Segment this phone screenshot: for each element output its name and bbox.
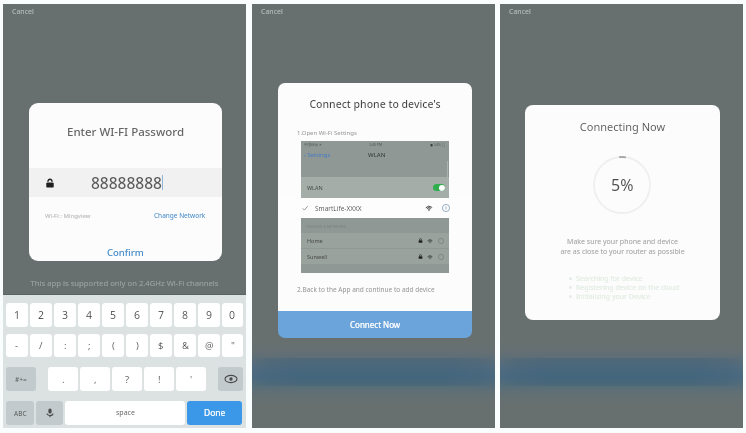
staticText: 5 — [110, 308, 117, 322]
staticText: / — [39, 339, 43, 352]
button[interactable]: 8 — [174, 303, 196, 327]
staticText: 2.Back to the App and continue to add de… — [297, 285, 435, 294]
button[interactable]: 0 — [222, 303, 243, 327]
staticText: Connecting Now — [525, 119, 720, 134]
staticText: 7 — [158, 308, 165, 322]
button[interactable]: 6 — [126, 303, 148, 327]
staticText: $ — [158, 339, 164, 352]
button[interactable]: @ — [198, 334, 220, 357]
staticText: : — [64, 339, 67, 352]
button[interactable]: ( — [102, 334, 124, 357]
button[interactable]: Connect Now — [278, 311, 472, 338]
staticText: ; — [88, 339, 91, 352]
staticText: Sunwell — [307, 253, 328, 260]
staticText: Confirm — [107, 246, 144, 259]
staticText: " — [231, 339, 235, 352]
button[interactable]: - — [6, 334, 28, 357]
staticText: WLAN — [307, 184, 323, 191]
button[interactable]: ) — [126, 334, 148, 357]
staticText: 0 — [229, 308, 236, 322]
staticText: 6 — [134, 308, 141, 322]
staticText: ) — [136, 339, 139, 352]
button[interactable]: ? — [112, 367, 142, 391]
staticText: Connect phone to device's — [278, 97, 472, 111]
button[interactable]: 1 — [6, 303, 28, 327]
staticText: 4 — [86, 308, 93, 322]
staticText: Wi-Fi : Mingview — [45, 212, 91, 220]
button[interactable]: ABC — [6, 401, 34, 425]
staticText: 2 — [38, 308, 45, 322]
button[interactable]: ! — [144, 367, 174, 391]
button[interactable]: 5 — [102, 303, 124, 327]
button[interactable]: & — [174, 334, 196, 357]
button[interactable]: ; — [78, 334, 100, 357]
staticText: ‹ Settings — [304, 151, 331, 159]
staticText: 1 — [14, 308, 21, 322]
button[interactable]: " — [222, 334, 243, 357]
button[interactable]: 3 — [54, 303, 76, 327]
staticText: , — [94, 373, 97, 386]
staticText: Initializing your Device — [576, 292, 651, 301]
staticText: & — [182, 339, 189, 352]
staticText: 88888888 — [91, 172, 162, 193]
button[interactable]: 2 — [30, 303, 52, 327]
staticText: CHOOSE A NETWORK... — [306, 224, 350, 229]
button[interactable]: Cancel — [500, 4, 743, 22]
button[interactable]: 9 — [198, 303, 220, 327]
staticText: Done — [204, 407, 226, 419]
button[interactable]: ' — [176, 367, 206, 391]
staticText: 9 — [206, 308, 213, 322]
staticText: ? — [125, 373, 130, 386]
staticText: ● 54% □ — [430, 142, 446, 147]
button[interactable]: : — [54, 334, 76, 357]
staticText: Home — [307, 237, 323, 244]
staticText: Searching for device — [576, 274, 643, 283]
button[interactable]: #+= — [6, 367, 36, 391]
staticText: @ — [205, 339, 214, 352]
button[interactable]: Confirm — [29, 244, 222, 260]
button[interactable]: Voice input — [36, 401, 63, 425]
staticText: 5% — [611, 174, 634, 196]
staticText: Cancel — [12, 7, 34, 17]
button[interactable]: Cancel — [252, 4, 495, 22]
button[interactable]: / — [30, 334, 52, 357]
button[interactable]: Done — [187, 401, 242, 425]
staticText: Cancel — [509, 7, 531, 17]
staticText: WLAN — [368, 151, 386, 159]
staticText: space — [116, 408, 135, 418]
staticText: Change Network — [154, 211, 206, 220]
staticText: Make sure your phone and device are as c… — [525, 237, 720, 257]
staticText: 3 — [62, 308, 69, 322]
button[interactable]: , — [80, 367, 110, 391]
staticText: Connect Now — [350, 319, 401, 330]
staticText: 8 — [182, 308, 189, 322]
button[interactable]: Backspace — [218, 367, 243, 391]
staticText: Registering device on the cloud — [576, 283, 680, 292]
button[interactable]: Cancel — [3, 4, 246, 22]
button[interactable]: Change Network — [154, 211, 206, 220]
staticText: 中国移动 ✈ — [304, 142, 322, 147]
button[interactable]: 4 — [78, 303, 100, 327]
staticText: ABC — [14, 409, 27, 418]
button[interactable]: . — [48, 367, 78, 391]
staticText: SmartLife-XXXX — [315, 204, 362, 213]
staticText: . — [62, 373, 65, 386]
staticText: 1.Open Wi-Fi Settings — [297, 129, 357, 137]
staticText: - — [15, 339, 19, 352]
staticText: Cancel — [261, 7, 283, 17]
staticText: This app is supported only on 2.4GHz Wi-… — [3, 278, 246, 288]
staticText: #+= — [15, 375, 27, 384]
staticText: ' — [190, 373, 193, 386]
button[interactable]: 7 — [150, 303, 172, 327]
staticText: 3:40 PM — [369, 142, 383, 147]
staticText: Enter WI-FI Password — [29, 124, 222, 140]
button[interactable]: space — [65, 401, 185, 425]
staticText: ! — [158, 373, 161, 386]
staticText: ( — [112, 339, 115, 352]
button[interactable]: $ — [150, 334, 172, 357]
